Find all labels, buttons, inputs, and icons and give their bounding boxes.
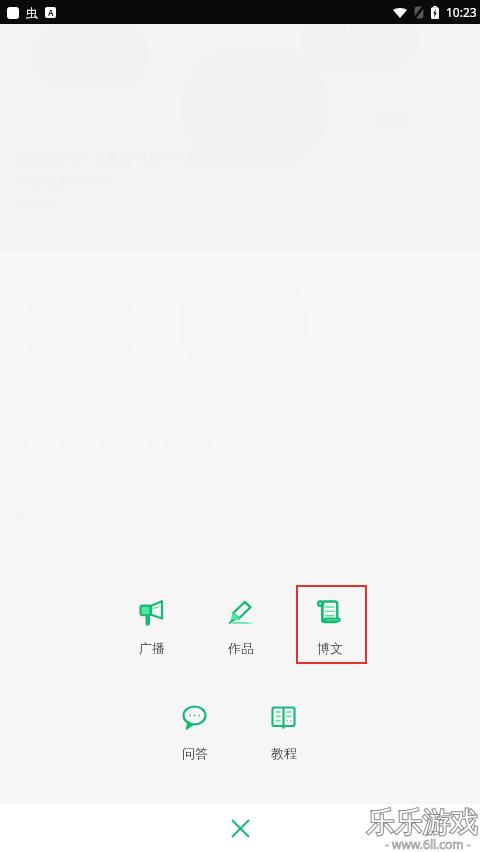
staticText: A <box>48 7 54 18</box>
staticText: 作品 <box>228 640 254 656</box>
button[interactable]: Close <box>0 804 480 852</box>
staticText: 博文 <box>317 640 343 656</box>
staticText: 教程 <box>271 745 297 761</box>
staticText: - www.6ll.com - <box>385 836 471 852</box>
staticText: 问答 <box>182 745 208 761</box>
button[interactable]: 作品 <box>196 585 285 664</box>
staticText: 社区 <box>336 22 364 40</box>
button[interactable]: 广播 <box>107 585 196 664</box>
staticText: 乐乐游戏 <box>366 805 478 840</box>
staticText: 10:23 <box>446 4 477 20</box>
button[interactable]: 教程 <box>239 690 328 769</box>
staticText: 广播 <box>139 640 165 656</box>
button[interactable]: 问答 <box>150 690 239 769</box>
staticText: 虫 <box>26 5 38 20</box>
button[interactable]: 博文 <box>285 585 374 664</box>
